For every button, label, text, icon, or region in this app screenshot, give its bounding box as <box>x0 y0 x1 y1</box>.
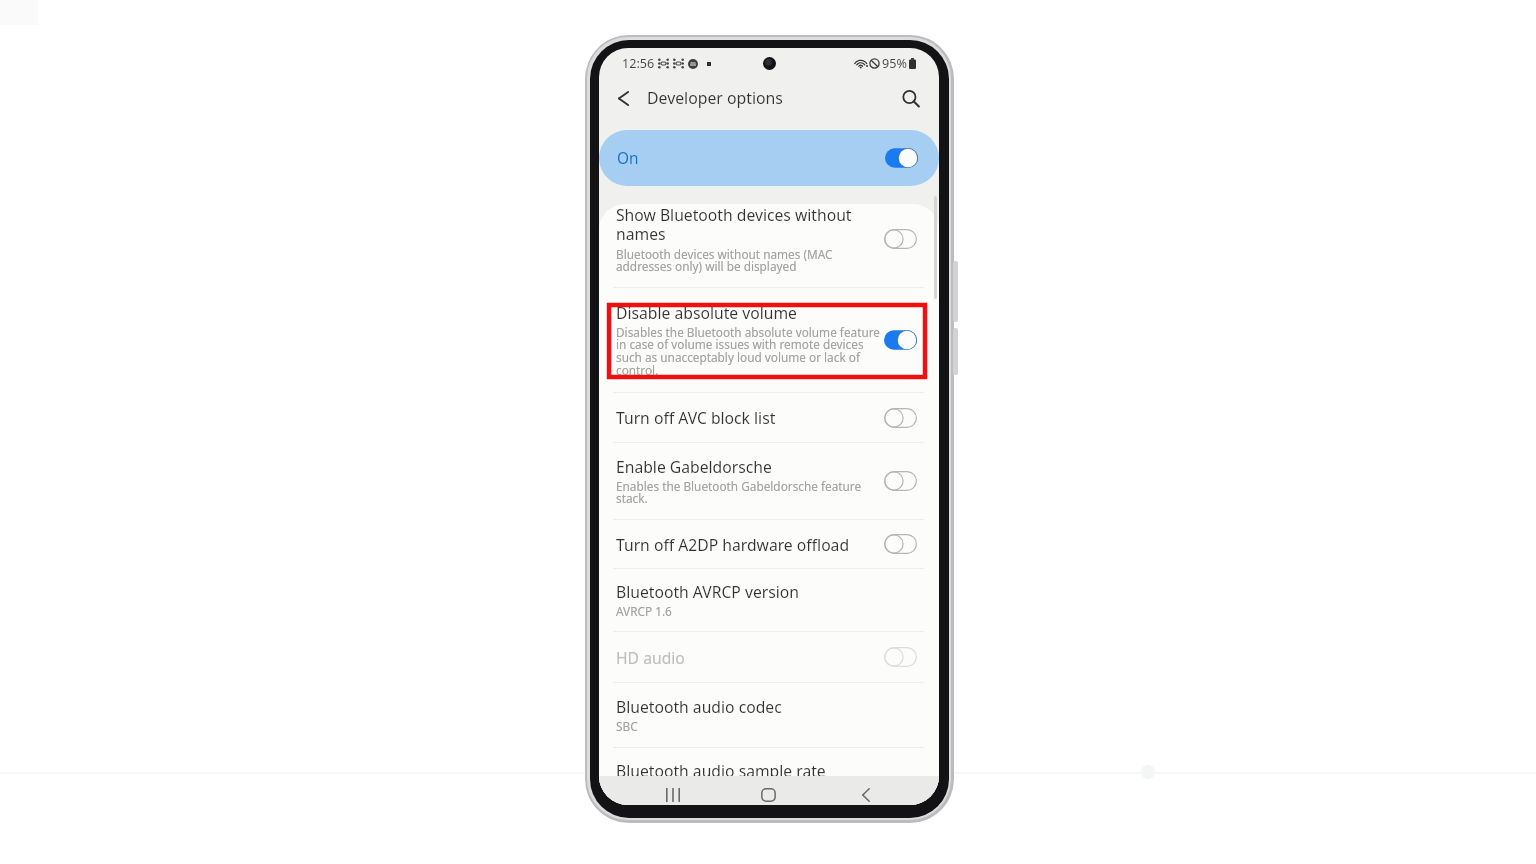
staticText: Developer options <box>647 87 783 109</box>
button[interactable]: Turn off AVC block list <box>599 393 939 442</box>
button[interactable]: Enable Gabeldorsche <box>599 443 939 519</box>
staticText: Show Bluetooth devices without names <box>616 204 868 245</box>
button[interactable]: Show Bluetooth devices without names, of… <box>884 229 917 249</box>
staticText: Enable Gabeldorsche <box>616 456 868 477</box>
staticText: SBC <box>616 718 638 734</box>
button[interactable]: Back <box>817 776 914 805</box>
button[interactable]: Bluetooth AVRCP version <box>599 569 939 631</box>
button[interactable]: Turn off AVC block list, off <box>884 408 917 428</box>
staticText: HD audio <box>616 647 868 668</box>
button[interactable]: Navigate up <box>605 80 642 117</box>
button[interactable]: Show Bluetooth devices without names <box>599 204 939 287</box>
button[interactable]: Bluetooth audio codec <box>599 683 939 747</box>
button[interactable]: HD audio, off <box>884 647 917 667</box>
button[interactable]: Disable absolute volume, on <box>884 330 917 350</box>
staticText: Bluetooth devices without names (MAC add… <box>616 246 833 275</box>
button[interactable]: Turn off A2DP hardware offload, off <box>884 534 917 554</box>
staticText: Disable absolute volume <box>616 302 868 323</box>
staticText: 12:56 <box>622 55 655 72</box>
button[interactable]: Turn off A2DP hardware offload <box>599 520 939 568</box>
staticText: Bluetooth audio sample rate <box>616 760 868 781</box>
button[interactable]: HD audio <box>599 632 939 682</box>
staticText: AVRCP 1.6 <box>616 603 672 619</box>
staticText: Bluetooth audio codec <box>616 696 868 717</box>
staticText: 95% <box>882 55 907 72</box>
button[interactable]: Bluetooth audio sample rate <box>599 748 939 792</box>
button[interactable]: Recent apps <box>624 776 720 805</box>
staticText: Disables the Bluetooth absolute volume f… <box>616 324 881 379</box>
staticText: Bluetooth AVRCP version <box>616 581 868 602</box>
button[interactable]: Search <box>892 80 929 117</box>
button[interactable]: Disable absolute volume <box>599 288 939 392</box>
button[interactable]: Home <box>720 776 817 805</box>
staticText: Turn off A2DP hardware offload <box>616 534 868 555</box>
button[interactable]: On <box>599 130 939 186</box>
staticText: Turn off AVC block list <box>616 407 868 428</box>
staticText: On <box>617 148 639 169</box>
button[interactable]: Enable Gabeldorsche, off <box>884 471 917 491</box>
staticText: Enables the Bluetooth Gabeldorsche featu… <box>616 478 862 507</box>
